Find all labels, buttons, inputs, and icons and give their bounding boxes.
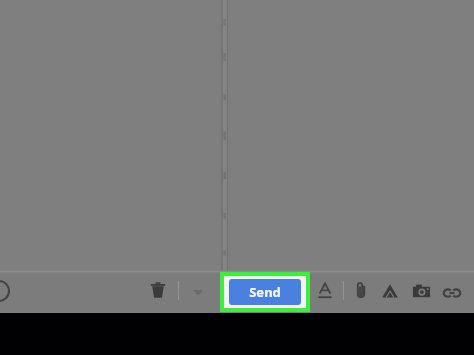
staticText: Send bbox=[249, 283, 281, 301]
button[interactable]: Discard draft bbox=[149, 281, 167, 299]
button[interactable]: Insert link bbox=[443, 284, 461, 302]
button[interactable]: Attach files bbox=[351, 280, 371, 300]
button[interactable]: More send options bbox=[190, 284, 206, 300]
button[interactable]: Insert from Drive bbox=[381, 282, 399, 300]
button[interactable]: Formatting options bbox=[316, 281, 334, 299]
button[interactable]: Insert photo bbox=[412, 282, 431, 301]
button[interactable]: Send bbox=[229, 279, 301, 305]
button[interactable]: Insert emoji bbox=[0, 280, 10, 302]
